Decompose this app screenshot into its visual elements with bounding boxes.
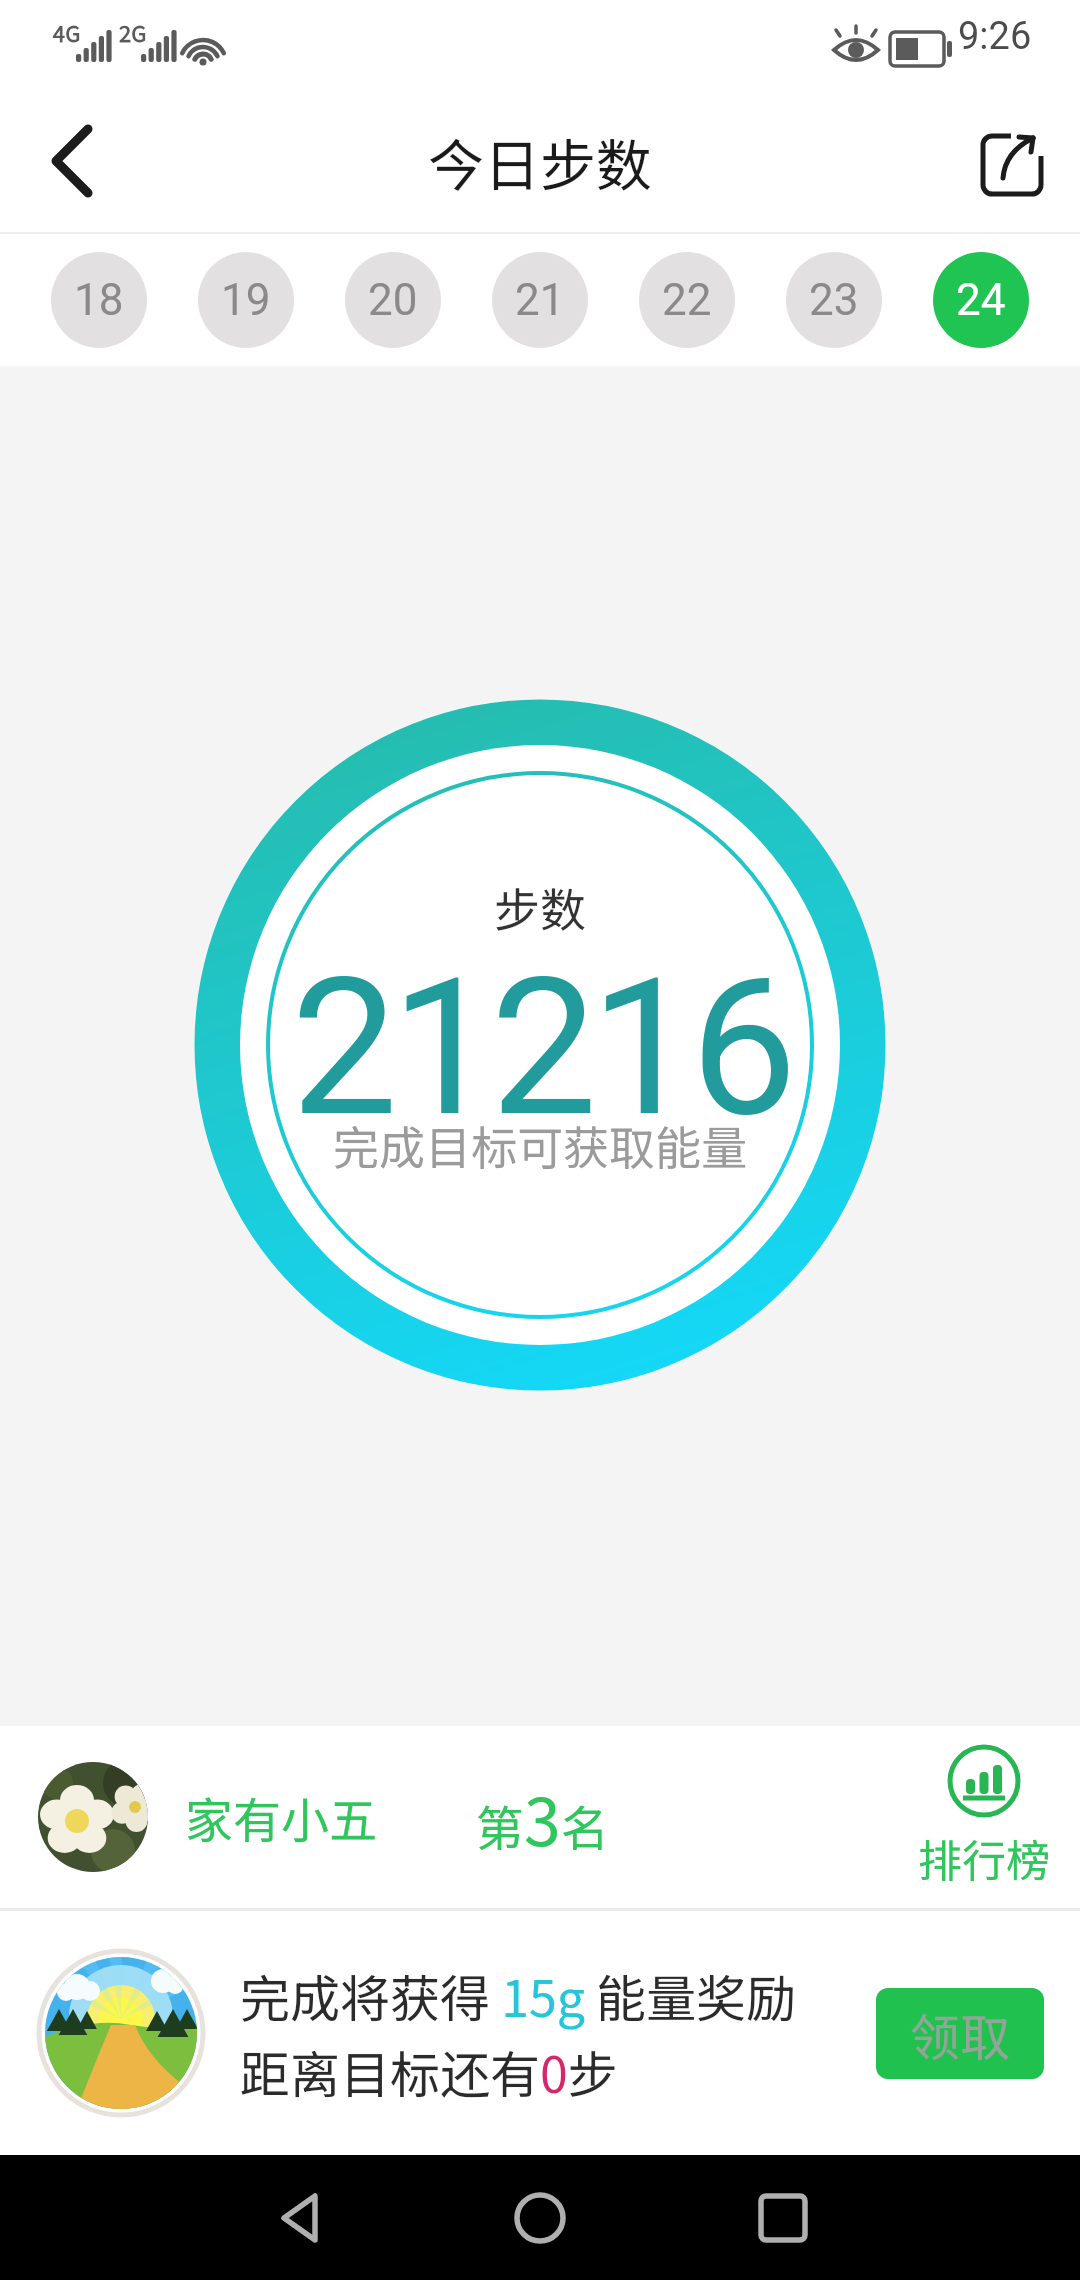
- button[interactable]: 19: [198, 252, 294, 348]
- staticText: 领取: [910, 1998, 1010, 2070]
- button[interactable]: [972, 121, 1052, 201]
- staticText: 18: [74, 274, 124, 326]
- button[interactable]: 21: [492, 252, 588, 348]
- staticText: 4G: [53, 16, 81, 48]
- button[interactable]: [26, 116, 116, 206]
- staticText: 23: [809, 274, 859, 326]
- button[interactable]: [703, 2155, 863, 2280]
- staticText: 今日步数: [428, 121, 652, 202]
- button[interactable]: 23: [786, 252, 882, 348]
- staticText: 步数: [494, 874, 586, 941]
- staticText: 第3名: [476, 1769, 609, 1865]
- staticText: 20: [368, 274, 418, 326]
- staticText: 19: [221, 274, 271, 326]
- staticText: 21: [515, 274, 565, 326]
- button[interactable]: [460, 2155, 620, 2280]
- staticText: 22: [662, 274, 712, 326]
- staticText: 24: [956, 274, 1006, 326]
- button[interactable]: 20: [345, 252, 441, 348]
- staticText: 排行榜: [918, 1826, 1050, 1890]
- button[interactable]: 家有小五: [0, 1726, 1080, 1908]
- button[interactable]: 领取: [876, 1988, 1044, 2079]
- button[interactable]: 22: [639, 252, 735, 348]
- button[interactable]: 24: [933, 252, 1029, 348]
- staticText: 完成目标可获取能量: [333, 1112, 747, 1179]
- staticText: 家有小五: [185, 1782, 378, 1852]
- staticText: 2G: [119, 16, 147, 48]
- button[interactable]: 排行榜: [918, 1744, 1050, 1890]
- staticText: 21216: [291, 937, 790, 1160]
- button[interactable]: 18: [51, 252, 147, 348]
- button[interactable]: [220, 2155, 380, 2280]
- staticText: 距离目标还有0步: [240, 2035, 618, 2107]
- staticText: 9:26: [958, 14, 1032, 59]
- staticText: 完成将获得 15g 能量奖励: [240, 1959, 797, 2031]
